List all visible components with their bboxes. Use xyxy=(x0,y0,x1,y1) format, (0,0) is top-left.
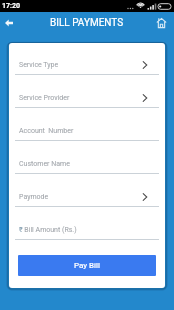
button[interactable]: Back xyxy=(1,15,17,31)
button[interactable]: Account Number xyxy=(15,122,159,155)
staticText: Paymode xyxy=(19,193,49,201)
staticText: Pay Bill xyxy=(74,261,100,270)
button[interactable]: Paymode xyxy=(15,188,159,221)
staticText: BILL PAYMENTS xyxy=(50,17,124,29)
staticText: Customer Name xyxy=(19,160,70,168)
button[interactable]: ₹ Bill Amount (Rs.) xyxy=(15,221,159,254)
button[interactable]: Pay Bill xyxy=(18,255,156,276)
staticText: Account Number xyxy=(19,127,74,135)
button[interactable]: Service Type xyxy=(15,56,159,89)
staticText: Service Provider xyxy=(19,94,70,102)
button[interactable]: Home xyxy=(152,14,170,32)
staticText: 17:20 xyxy=(2,2,21,10)
staticText: Service Type xyxy=(19,61,59,69)
staticText: ₹ Bill Amount (Rs.) xyxy=(19,226,77,234)
button[interactable]: Service Provider xyxy=(15,89,159,122)
button[interactable]: Customer Name xyxy=(15,155,159,188)
